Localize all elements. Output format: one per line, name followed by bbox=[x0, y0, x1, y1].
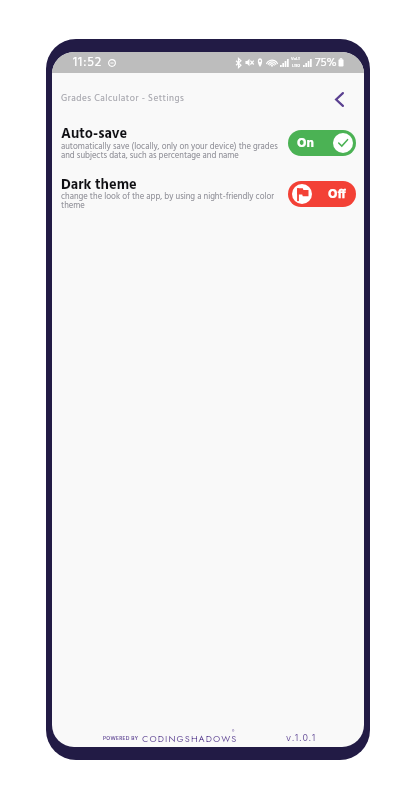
button[interactable]: Off bbox=[288, 181, 356, 207]
staticText: On bbox=[297, 133, 314, 153]
staticText: ® bbox=[232, 729, 235, 737]
staticText: Off bbox=[328, 184, 346, 204]
staticText: CODINGSHADOWS bbox=[142, 732, 238, 745]
button[interactable]: Back bbox=[326, 86, 352, 112]
staticText: 75% bbox=[315, 53, 337, 72]
button[interactable]: On bbox=[288, 130, 356, 156]
staticText: Dark theme bbox=[61, 174, 137, 197]
staticText: automatically save (locally, only on you… bbox=[61, 140, 280, 163]
staticText: v.1.0.1 bbox=[286, 730, 317, 746]
staticText: 11:52 bbox=[73, 52, 102, 73]
staticText: POWERED BY bbox=[103, 734, 139, 743]
staticText: Grades Calculator - Settings bbox=[61, 91, 185, 106]
staticText: LTE2 bbox=[292, 63, 301, 70]
staticText: Auto-save bbox=[61, 123, 128, 146]
staticText: change the look of the app, by using a n… bbox=[61, 190, 280, 213]
staticText: VoLT bbox=[291, 56, 301, 63]
